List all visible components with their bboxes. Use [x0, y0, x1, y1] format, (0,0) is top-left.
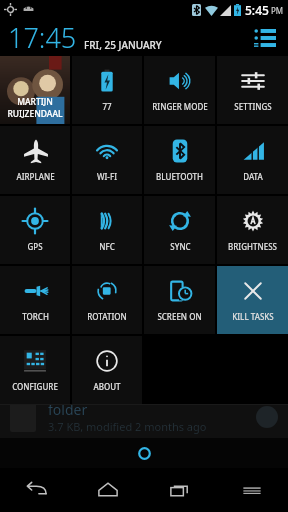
staticText: 3.7 KB, modified 2 months ago [48, 419, 207, 434]
staticText: TORCH [22, 311, 49, 322]
button[interactable]: DATA [217, 126, 288, 194]
staticText: ABOUT [93, 381, 121, 392]
button[interactable]: SYNC [144, 196, 215, 264]
button[interactable]: Quick settings list [248, 21, 282, 55]
staticText: CONFIGURE [12, 381, 58, 392]
staticText: KILL TASKS [232, 311, 274, 322]
button[interactable]: BRIGHTNESS [217, 196, 288, 264]
button[interactable]: Back [0, 468, 72, 512]
button[interactable]: SCREEN ON [144, 266, 215, 334]
staticText: SETTINGS [234, 101, 272, 112]
staticText: SAI [48, 214, 70, 233]
button[interactable]: KILL TASKS [217, 266, 288, 334]
staticText: folder [48, 400, 88, 419]
button[interactable]: Home [72, 468, 144, 512]
button[interactable]: AIRPLANE [0, 126, 70, 194]
staticText: RINGER MODE [152, 101, 208, 112]
staticText: DATA [243, 171, 263, 182]
staticText: RUIJZENDAAL [7, 108, 63, 120]
button[interactable]: MARTIJN [0, 56, 70, 124]
staticText: BRIGHTNESS [228, 241, 277, 252]
staticText: 3.7 KB, modified 2 months ago [48, 357, 207, 372]
staticText: 3.7 KB, modified 2 months ago [48, 295, 207, 310]
button[interactable]: CONFIGURE [0, 336, 70, 404]
staticText: SCREEN ON [157, 311, 202, 322]
staticText: FRI, 25 JANUARY [84, 38, 162, 52]
button[interactable]: Recents [144, 468, 216, 512]
button[interactable]: ABOUT [72, 336, 142, 404]
staticText: 17:45 [8, 19, 77, 56]
staticText: 3.7 KB, modified 2 months ago [48, 233, 207, 248]
staticText: 5:45 [245, 2, 269, 18]
staticText: NFC [99, 241, 115, 252]
button[interactable]: WI-FI [72, 126, 142, 194]
staticText: 77 [102, 101, 112, 112]
staticText: folder [48, 276, 88, 295]
button[interactable]: Close panel [131, 440, 157, 466]
staticText: WI-FI [97, 171, 117, 182]
staticText: GPS [27, 241, 43, 252]
button[interactable]: BLUETOOTH [144, 126, 215, 194]
button[interactable]: RINGER MODE [144, 56, 215, 124]
button[interactable]: NFC [72, 196, 142, 264]
staticText: SYNC [170, 241, 191, 252]
staticText: MARTIJN [17, 96, 53, 108]
button[interactable]: SETTINGS [217, 56, 288, 124]
button[interactable]: ROTATION [72, 266, 142, 334]
button[interactable]: Menu [216, 468, 288, 512]
staticText: PM [271, 5, 284, 16]
staticText: AIRPLANE [16, 171, 55, 182]
button[interactable]: 77 [72, 56, 142, 124]
staticText: ROTATION [87, 311, 127, 322]
button[interactable]: TORCH [0, 266, 70, 334]
button[interactable]: GPS [0, 196, 70, 264]
staticText: BLUETOOTH [156, 171, 203, 182]
